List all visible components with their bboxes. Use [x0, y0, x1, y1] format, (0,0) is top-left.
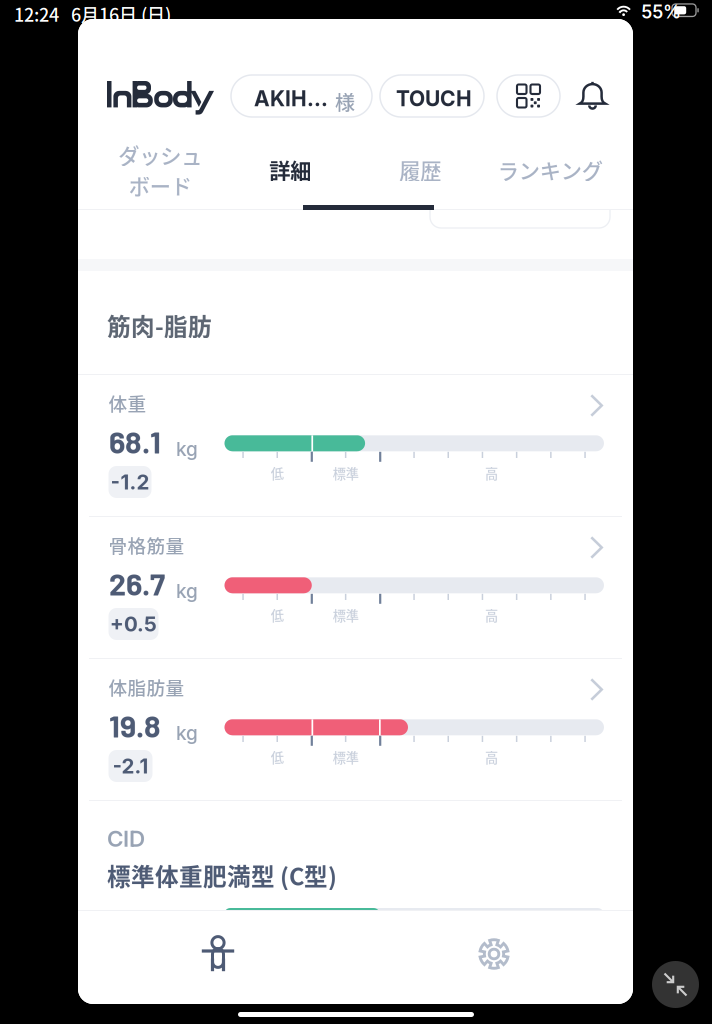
staticText: 高	[485, 463, 498, 483]
staticText: 68.1	[109, 423, 161, 460]
button[interactable]: Settings	[434, 920, 554, 990]
button[interactable]: 体重	[78, 375, 633, 517]
button[interactable]: ダッシュボード	[95, 139, 225, 205]
button[interactable]: TOUCH	[380, 75, 484, 117]
staticText: 標準	[333, 605, 359, 625]
button[interactable]: Scan QR code	[497, 75, 560, 117]
staticText: 低	[271, 463, 284, 483]
button[interactable]: 詳細	[225, 139, 355, 205]
staticText: 低	[271, 747, 284, 767]
staticText: ダッシュボード	[118, 139, 202, 201]
staticText: TOUCH	[396, 86, 472, 111]
staticText: 体脂肪量	[108, 673, 184, 700]
button[interactable]: 骨格筋量	[78, 517, 633, 659]
staticText: 骨格筋量	[108, 531, 184, 558]
button[interactable]: 履歴	[355, 139, 485, 205]
staticText: 高	[485, 605, 498, 625]
staticText: 26.7	[109, 565, 165, 602]
button[interactable]: Notifications	[572, 75, 614, 117]
staticText: CID	[107, 825, 145, 852]
button[interactable]: Body composition	[158, 920, 278, 990]
staticText: 筋肉-脂肪	[107, 308, 212, 342]
staticText: 55%	[641, 1, 681, 23]
staticText: 標準	[333, 747, 359, 767]
button[interactable]: ランキング	[485, 139, 615, 205]
button[interactable]: 体脂肪量	[78, 659, 633, 801]
button[interactable]: Exit full screen	[652, 961, 699, 1008]
staticText: 高	[485, 747, 498, 767]
staticText: kg	[176, 721, 198, 744]
staticText: 標準体重肥満型 (C型)	[107, 858, 337, 892]
staticText: kg	[176, 437, 198, 460]
staticText: 低	[271, 605, 284, 625]
staticText: 履歴	[399, 155, 441, 185]
staticText: 様	[335, 87, 355, 116]
staticText: +0.5	[110, 612, 157, 636]
staticText: ランキング	[497, 155, 602, 185]
staticText: AKIH...	[254, 86, 328, 111]
staticText: kg	[176, 579, 198, 602]
staticText: 詳細	[269, 155, 311, 185]
staticText: 標準	[333, 463, 359, 483]
staticText: 体重	[108, 389, 146, 416]
staticText: 12:24 6月16日 (日)	[14, 1, 171, 27]
button[interactable]: AKIH...	[231, 75, 372, 117]
staticText: 19.8	[109, 707, 161, 744]
staticText: -2.1	[112, 754, 148, 778]
staticText: -1.2	[110, 470, 149, 494]
